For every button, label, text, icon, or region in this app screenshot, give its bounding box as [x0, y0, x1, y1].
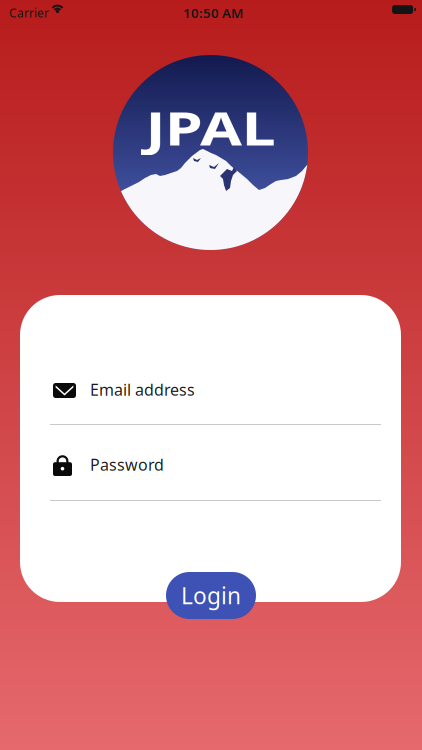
staticText: 10:50 AM: [183, 4, 243, 22]
staticText: Email address: [90, 379, 195, 400]
button[interactable]: Password: [50, 454, 381, 501]
staticText: Login: [181, 580, 241, 610]
staticText: JPAL: [160, 96, 260, 158]
staticText: Carrier: [9, 5, 49, 21]
button[interactable]: Email address: [50, 379, 381, 425]
button[interactable]: Login: [166, 572, 256, 619]
staticText: Password: [90, 454, 164, 475]
